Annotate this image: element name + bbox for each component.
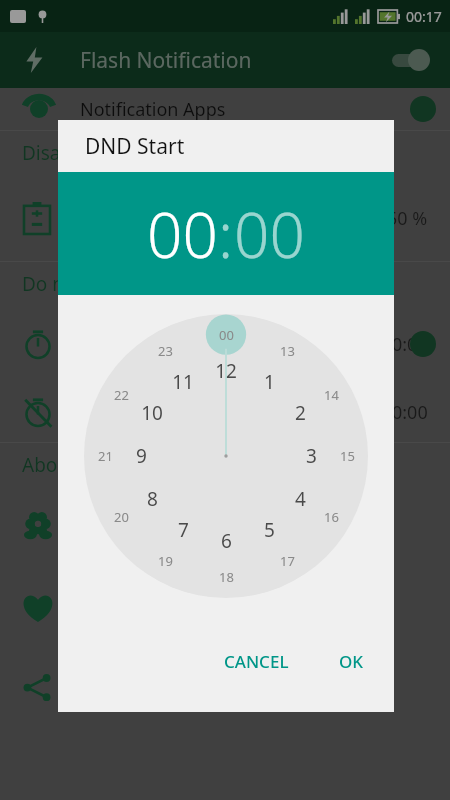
staticText: Notification Apps [80, 97, 226, 122]
staticText: 16 [324, 508, 339, 526]
button[interactable]: 0:00 [0, 306, 450, 382]
staticText: Disable Flash when [22, 140, 194, 166]
staticText: 4 [295, 486, 306, 512]
button[interactable]: 00 [234, 192, 305, 276]
staticText: 11 [172, 369, 194, 395]
staticText: 7 [178, 517, 189, 543]
button[interactable]: Toggle flash notification [386, 49, 432, 71]
button[interactable] [0, 487, 450, 567]
staticText: 13 [280, 342, 295, 360]
staticText: 19 [158, 552, 173, 570]
button[interactable]: 50 % [0, 175, 450, 261]
staticText: DND Start [85, 132, 185, 161]
staticText: 0:00 [392, 332, 428, 357]
staticText: 17 [280, 552, 295, 570]
staticText: 10 [141, 400, 163, 426]
button[interactable]: Toggle [410, 96, 436, 122]
staticText: 50 % [387, 206, 428, 231]
staticText: 14 [324, 386, 339, 404]
staticText: 5 [264, 517, 275, 543]
staticText: : [218, 192, 234, 276]
staticText: 9 [136, 443, 147, 469]
staticText: Flash Notification [80, 46, 252, 75]
staticText: 3 [306, 443, 317, 469]
button[interactable]: 0:00 [0, 382, 450, 442]
staticText: 2 [295, 400, 306, 426]
staticText: 00 [219, 326, 234, 344]
button[interactable]: Share [0, 647, 450, 727]
staticText: OK [339, 650, 364, 673]
staticText: Do not Disturb [22, 271, 154, 297]
button[interactable]: CANCEL [212, 640, 301, 683]
button[interactable]: OK [327, 640, 376, 683]
button[interactable] [0, 567, 450, 647]
staticText: 22 [114, 386, 129, 404]
staticText: 21 [98, 447, 113, 465]
staticText: 6 [221, 528, 232, 554]
button[interactable]: Toggle [410, 331, 436, 357]
staticText: 00:17 [406, 7, 442, 26]
button[interactable]: 00 [147, 192, 218, 276]
staticText: 18 [219, 568, 234, 586]
staticText: About [22, 452, 76, 478]
staticText: 20 [114, 508, 129, 526]
staticText: 15 [340, 447, 355, 465]
staticText: CANCEL [224, 650, 289, 673]
staticText: 12 [215, 358, 237, 384]
staticText: 0:00 [392, 400, 428, 425]
staticText: 1 [264, 369, 275, 395]
button[interactable]: Notification Apps [0, 88, 450, 130]
button[interactable]: Select hour [84, 314, 368, 598]
staticText: 8 [147, 486, 158, 512]
staticText: 23 [158, 342, 173, 360]
